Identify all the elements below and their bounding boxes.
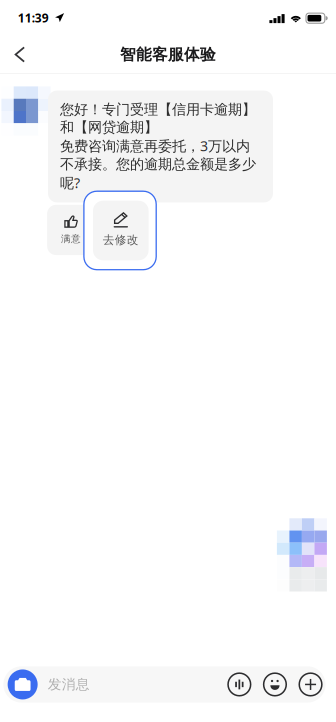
button[interactable]: 满意 <box>47 205 95 255</box>
button[interactable]: 更多 <box>295 669 325 699</box>
button[interactable]: 去修改 <box>84 191 156 270</box>
staticText: 发消息 <box>48 676 90 693</box>
button[interactable]: 发消息 <box>48 666 188 703</box>
staticText: 去修改 <box>103 232 139 247</box>
staticText: 满意 <box>61 233 81 245</box>
button[interactable]: 表情 <box>260 669 290 699</box>
staticText: 智能客服体验 <box>120 45 216 64</box>
button[interactable]: 返回 <box>0 36 42 73</box>
staticText: 您好！专门受理【信用卡逾期】和【网贷逾期】 免费咨询满意再委托，3万以内不承接。… <box>60 100 256 192</box>
button[interactable]: 语音输入 <box>224 669 254 699</box>
button[interactable]: 拍照 <box>6 666 40 703</box>
staticText: 11:39 <box>18 10 49 26</box>
